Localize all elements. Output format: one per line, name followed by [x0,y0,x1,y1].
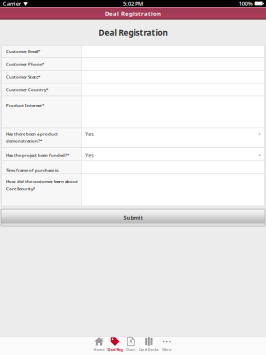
staticText: Docs [126,347,135,352]
staticText: Submit [123,214,142,221]
button[interactable]: Has the project been funded?* [1,148,264,160]
button[interactable]: A [124,337,138,355]
button[interactable]: More [160,337,174,355]
staticText: 100% [239,0,253,7]
button[interactable]: Card Decks [138,337,159,355]
staticText: demonstration?* [6,138,42,144]
staticText: Deal Reg [107,347,122,352]
staticText: Deal Registration [98,27,167,38]
button[interactable]: Customer Phone* [1,58,264,70]
button[interactable]: Deal Reg [106,337,123,355]
staticText: 5:02 PM [123,0,143,7]
staticText: Customer Country* [6,87,48,92]
staticText: Core Security? [6,186,35,191]
staticText: A [129,338,132,345]
button[interactable]: Home [92,337,106,355]
staticText: More [162,347,171,352]
button[interactable]: Product Interest* [1,96,264,128]
button[interactable]: Time frame of purchase is: [1,161,264,173]
staticText: Customer Phone* [6,61,44,67]
staticText: Customer Email* [6,48,40,54]
staticText: Time frame of purchase is: [6,167,59,173]
button[interactable]: Customer State* [1,71,264,83]
staticText: Customer State* [6,74,40,80]
button[interactable]: Customer Country* [1,83,264,96]
staticText: Yes [85,152,93,159]
staticText: Yes [85,130,93,137]
staticText: Carrier [3,0,21,7]
staticText: Home [94,347,105,352]
button[interactable]: Customer Email* [1,45,264,57]
staticText: Has the project been funded?* [6,152,69,158]
staticText: Card Decks [139,347,159,352]
staticText: Deal Registration [105,9,161,18]
button[interactable]: Has there been a product [1,128,264,147]
staticText: Has there been a product [6,131,58,137]
button[interactable]: How did the customer learn about [1,174,264,206]
button[interactable]: Submit [1,209,265,226]
staticText: How did the customer learn about [6,178,78,184]
staticText: Product Interest* [6,102,44,108]
